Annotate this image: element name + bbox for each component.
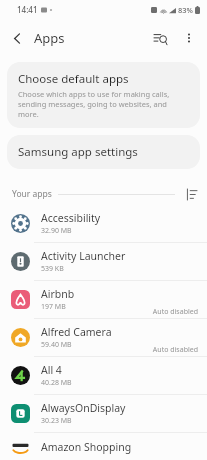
staticText: Amazon Shopping: [41, 440, 132, 454]
staticText: All 4: [41, 363, 62, 377]
button[interactable]: Back: [0, 21, 34, 55]
button[interactable]: All 4: [0, 357, 207, 394]
staticText: 539 KB: [41, 264, 64, 274]
staticText: Alfred Camera: [41, 325, 112, 339]
button[interactable]: Samsung app settings: [7, 135, 200, 169]
button[interactable]: Search: [145, 23, 175, 53]
button[interactable]: More options: [175, 24, 203, 52]
staticText: Your apps: [12, 188, 52, 200]
staticText: 30.23 MB: [41, 416, 72, 426]
staticText: 59.40 MB: [41, 340, 72, 350]
staticText: 32.90 MB: [41, 226, 72, 236]
staticText: 83%: [178, 5, 193, 15]
staticText: Samsung app settings: [18, 144, 138, 160]
staticText: Choose which apps to use for making call…: [18, 89, 189, 119]
staticText: Auto disabled: [152, 345, 198, 355]
button[interactable]: Alfred Camera: [0, 319, 207, 356]
staticText: Activity Launcher: [41, 249, 126, 263]
staticText: Auto disabled: [152, 307, 198, 317]
staticText: Choose default apps: [18, 71, 129, 87]
button[interactable]: Amazon Shopping: [0, 433, 207, 460]
button[interactable]: Activity Launcher: [0, 243, 207, 280]
button[interactable]: Choose default apps: [7, 62, 200, 128]
button[interactable]: Accessibility: [0, 205, 207, 242]
button[interactable]: Sort: [181, 184, 201, 204]
staticText: Apps: [34, 29, 65, 47]
staticText: Accessibility: [41, 211, 101, 225]
button[interactable]: Airbnb: [0, 281, 207, 318]
staticText: Airbnb: [41, 287, 75, 301]
button[interactable]: AlwaysOnDisplay: [0, 395, 207, 432]
staticText: 14:41: [17, 4, 38, 15]
staticText: AlwaysOnDisplay: [41, 401, 126, 415]
staticText: 197 MB: [41, 302, 66, 312]
staticText: 40.28 MB: [41, 378, 72, 388]
